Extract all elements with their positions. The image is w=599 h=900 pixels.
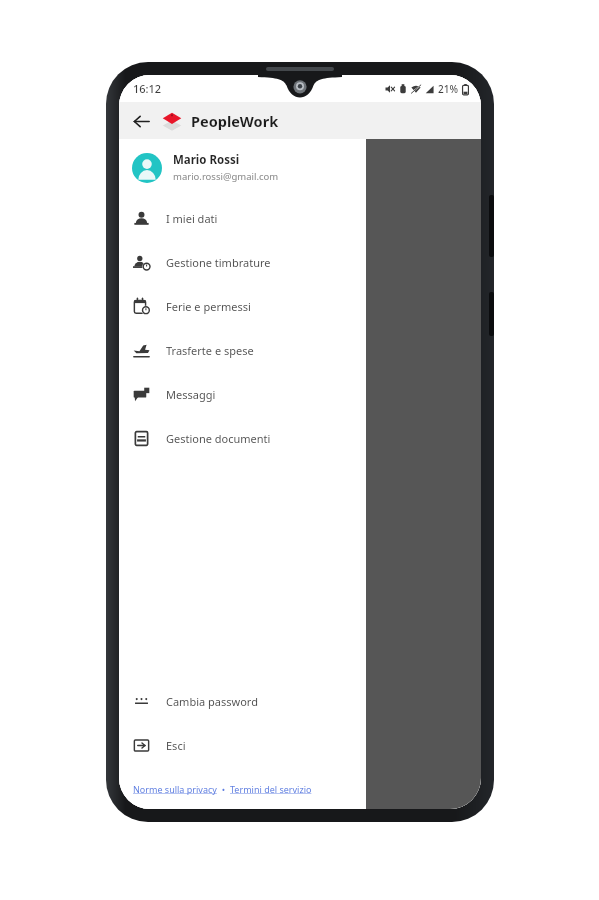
staticText: • — [217, 783, 230, 795]
staticText: 16:12 — [133, 81, 162, 96]
button[interactable]: Mario Rossi — [119, 139, 366, 196]
staticText: Termini del servizio — [230, 783, 312, 795]
button[interactable]: Trasferte e spese — [119, 328, 366, 372]
staticText: Gestione timbrature — [166, 255, 271, 270]
staticText: Esci — [166, 738, 186, 753]
button[interactable]: Norme sulla privacy — [133, 783, 217, 795]
button[interactable]: I miei dati — [119, 196, 366, 240]
button[interactable]: Gestione timbrature — [119, 240, 366, 284]
button[interactable]: Gestione documenti — [119, 416, 366, 460]
button[interactable]: Ferie e permessi — [119, 284, 366, 328]
staticText: PeopleWork — [191, 111, 279, 131]
button[interactable]: Esci — [119, 723, 366, 767]
staticText: mario.rossi@gmail.com — [173, 170, 279, 183]
staticText: Mario Rossi — [173, 152, 240, 168]
staticText: Trasferte e spese — [166, 343, 254, 358]
button[interactable]: Cambia password — [119, 679, 366, 723]
staticText: Cambia password — [166, 694, 258, 709]
button[interactable]: Messaggi — [119, 372, 366, 416]
staticText: Norme sulla privacy — [133, 783, 217, 795]
staticText: I miei dati — [166, 211, 218, 226]
staticText: Ferie e permessi — [166, 299, 251, 314]
button[interactable]: Termini del servizio — [230, 783, 312, 795]
button[interactable]: Back — [124, 104, 158, 138]
staticText: Messaggi — [166, 387, 216, 402]
staticText: 21% — [438, 82, 458, 96]
staticText: Gestione documenti — [166, 431, 271, 446]
